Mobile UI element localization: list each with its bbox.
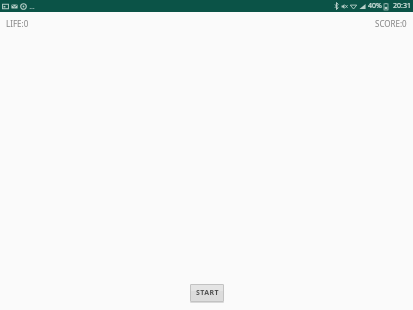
staticText: 20:31 [393, 1, 411, 11]
staticText: SCORE:0 [375, 18, 407, 29]
staticText: LIFE:0 [6, 18, 29, 29]
staticText: 40% [368, 1, 382, 11]
button[interactable]: START [190, 284, 224, 302]
staticText: START [196, 288, 219, 298]
